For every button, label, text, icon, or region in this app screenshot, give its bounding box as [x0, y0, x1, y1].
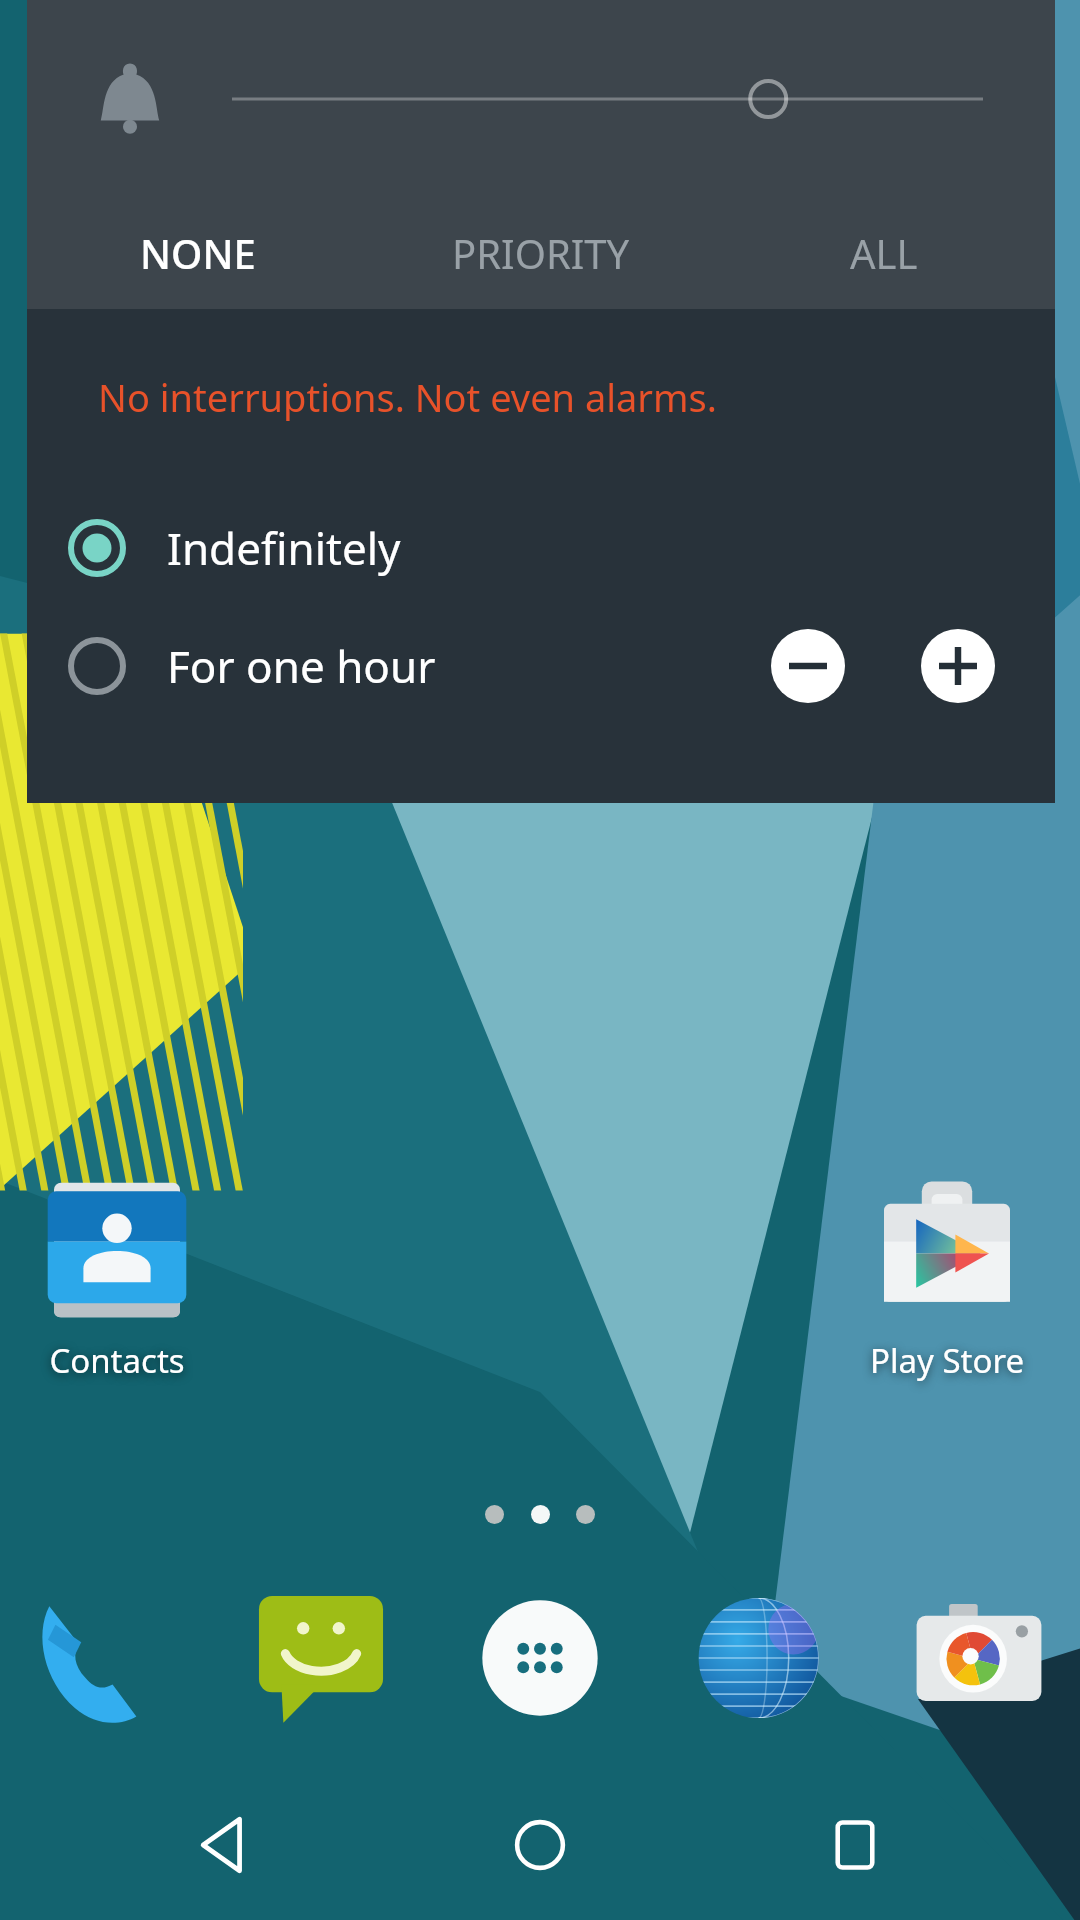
staticText: NONE: [140, 226, 256, 280]
button[interactable]: Increase: [921, 629, 995, 703]
button[interactable]: Phone: [18, 1575, 184, 1741]
staticText: PRIORITY: [452, 226, 630, 280]
button[interactable]: Indefinitely: [27, 489, 1055, 607]
button[interactable]: Contacts: [22, 1180, 212, 1383]
button[interactable]: Browser: [677, 1575, 843, 1741]
button[interactable]: Apps: [457, 1575, 623, 1741]
staticText: Play Store: [870, 1338, 1024, 1383]
button[interactable]: PRIORITY: [369, 197, 712, 309]
staticText: ALL: [850, 226, 918, 280]
staticText: No interruptions. Not even alarms.: [98, 371, 717, 423]
button[interactable]: Recents: [765, 1770, 945, 1920]
button[interactable]: Ringer mode: [27, 0, 232, 197]
button[interactable]: NONE: [27, 197, 369, 309]
button[interactable]: Home: [450, 1770, 630, 1920]
button[interactable]: Volume: [232, 0, 983, 197]
button[interactable]: Play Store: [842, 1180, 1052, 1383]
button[interactable]: Camera: [896, 1575, 1062, 1741]
button[interactable]: Messaging: [238, 1575, 404, 1741]
button[interactable]: For one hour: [27, 607, 1055, 725]
staticText: For one hour: [167, 636, 436, 696]
button[interactable]: Decrease: [771, 629, 845, 703]
button[interactable]: Back: [135, 1770, 315, 1920]
staticText: Contacts: [49, 1338, 185, 1383]
button[interactable]: ALL: [712, 197, 1055, 309]
staticText: Indefinitely: [167, 518, 401, 578]
